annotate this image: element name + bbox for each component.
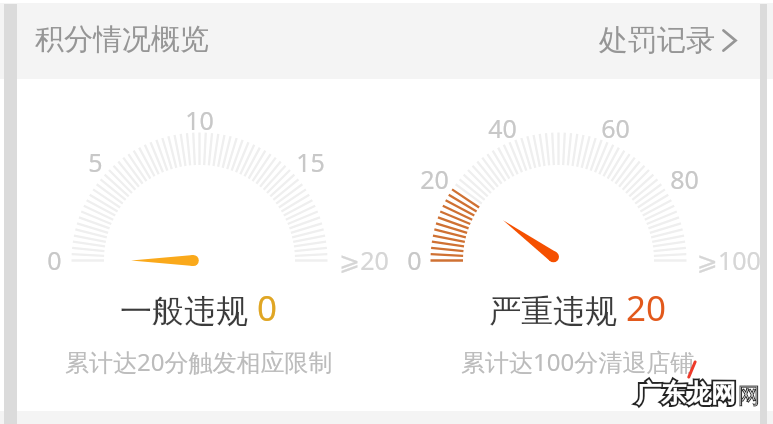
staticText: 一般违规 [120, 291, 248, 331]
staticText: 网 [738, 382, 760, 410]
staticText: 广东龙网 [636, 378, 736, 409]
staticText: 严重违规 [489, 291, 617, 331]
staticText: 广东龙网 [636, 378, 736, 409]
staticText: 累计达20分触发相应限制 [65, 345, 333, 378]
staticText: ⩾20 [339, 243, 389, 277]
staticText: 处罚记录 [599, 22, 715, 59]
staticText: 40 [488, 111, 517, 145]
staticText: 60 [601, 111, 630, 145]
staticText: 80 [670, 162, 699, 196]
staticText: ⩾100 [697, 243, 761, 277]
staticText: 0 [257, 284, 278, 332]
staticText: 15 [296, 145, 325, 179]
staticText: 累计达100分清退店铺 [461, 345, 695, 378]
staticText: 5 [88, 145, 103, 179]
staticText: 积分情况概览 [35, 21, 209, 58]
button[interactable]: 处罚记录 [599, 22, 737, 59]
staticText: 20 [420, 162, 449, 196]
staticText: 0 [47, 243, 62, 277]
staticText: 10 [185, 103, 214, 137]
staticText: 20 [626, 284, 667, 332]
staticText: 0 [407, 243, 422, 277]
